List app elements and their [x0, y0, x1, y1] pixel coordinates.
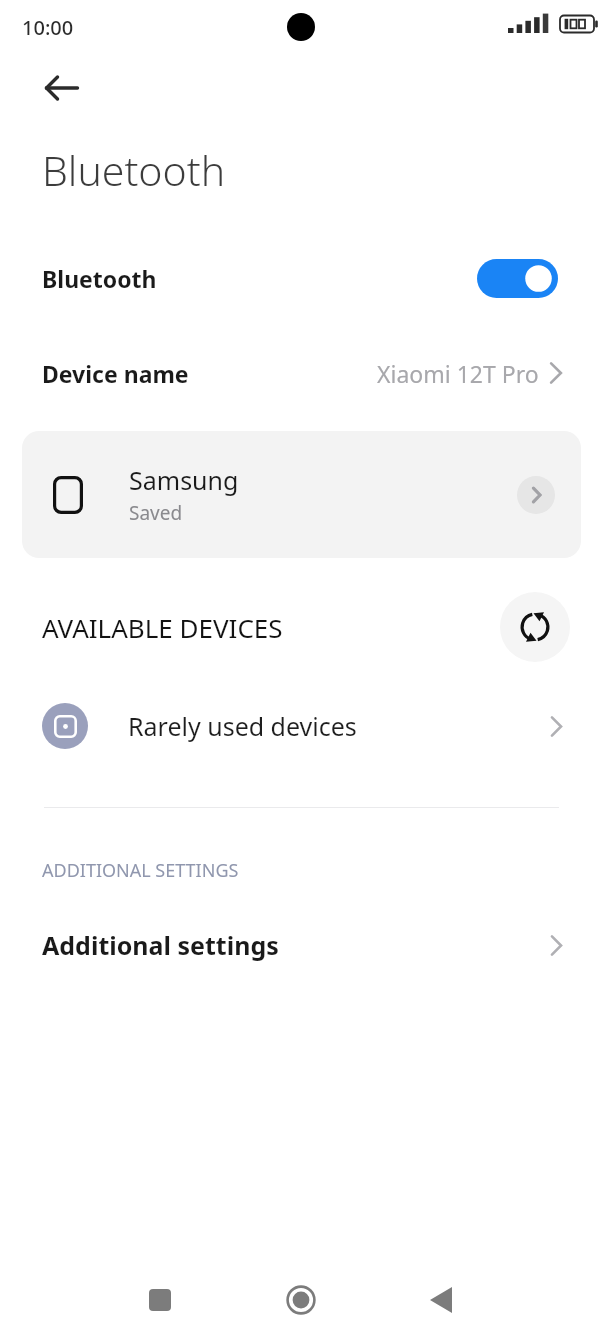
staticText: ADDITIONAL SETTINGS [42, 858, 239, 883]
staticText: Xiaomi 12T Pro [377, 358, 539, 389]
button[interactable]: Device settings [517, 476, 555, 514]
button[interactable]: Additional settings [0, 912, 603, 978]
staticText: Saved [129, 500, 183, 526]
button[interactable]: Refresh [500, 592, 570, 662]
button[interactable]: Bluetooth [0, 245, 603, 311]
button[interactable]: Recents [130, 1270, 190, 1330]
staticText: Additional settings [42, 928, 279, 962]
button[interactable]: Rarely used devices [0, 692, 603, 760]
staticText: 10:00 [22, 14, 74, 41]
button[interactable]: Back [28, 54, 96, 122]
button[interactable]: Samsung [22, 431, 581, 558]
staticText: Rarely used devices [128, 709, 357, 743]
button[interactable]: Home [271, 1270, 331, 1330]
button[interactable]: Bluetooth toggle [477, 259, 558, 298]
staticText: Bluetooth [42, 263, 157, 294]
button[interactable]: Back [411, 1270, 471, 1330]
staticText: AVAILABLE DEVICES [42, 610, 283, 645]
staticText: Samsung [129, 463, 239, 497]
button[interactable]: Device name [0, 340, 603, 406]
staticText: Device name [42, 358, 189, 389]
staticText: Bluetooth [42, 142, 226, 198]
